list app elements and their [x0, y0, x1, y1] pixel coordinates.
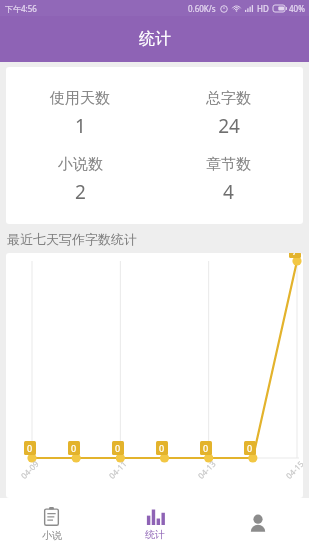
button[interactable]: 使用天数: [6, 67, 303, 224]
staticText: 04-15: [283, 458, 303, 481]
staticText: HD: [257, 3, 269, 14]
staticText: 0: [71, 442, 77, 454]
staticText: 总字数: [206, 89, 251, 108]
staticText: 0: [115, 442, 121, 454]
staticText: 7: [292, 253, 298, 257]
staticText: 统计: [139, 29, 171, 49]
staticText: 0: [203, 442, 209, 454]
staticText: 24: [218, 113, 240, 139]
button[interactable]: 小说: [0, 498, 103, 550]
staticText: 4: [223, 179, 234, 205]
staticText: 40%: [289, 3, 305, 14]
button[interactable]: 我的: [206, 498, 309, 550]
staticText: 最近七天写作字数统计: [7, 231, 137, 247]
staticText: 小说: [42, 529, 62, 542]
staticText: 04-13: [195, 458, 218, 481]
staticText: 0: [27, 442, 33, 454]
staticText: 0: [159, 442, 165, 454]
staticText: 0.60K/s: [188, 3, 216, 14]
staticText: 04-09: [18, 458, 41, 481]
staticText: 2: [75, 179, 86, 205]
staticText: 小说数: [58, 155, 103, 174]
staticText: 0: [247, 442, 253, 454]
staticText: 章节数: [206, 155, 251, 174]
button[interactable]: 7.0: [6, 253, 303, 498]
staticText: 使用天数: [50, 89, 110, 108]
staticText: 统计: [145, 528, 165, 541]
button[interactable]: 统计: [103, 498, 206, 550]
staticText: 04-11: [106, 458, 129, 481]
staticText: 下午4:56: [5, 3, 37, 14]
staticText: 1: [75, 113, 86, 139]
